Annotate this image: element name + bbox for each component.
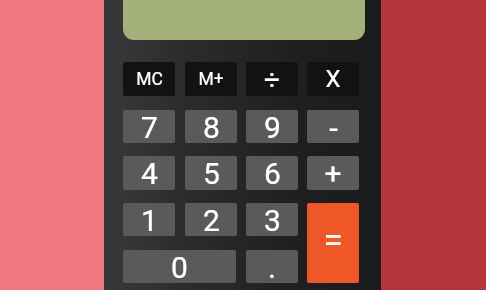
staticText: + (324, 156, 342, 190)
staticText: X (325, 65, 341, 93)
button[interactable]: Divide (246, 62, 298, 96)
button[interactable]: 1 (123, 203, 175, 236)
staticText: 9 (264, 110, 281, 143)
staticText: = (323, 220, 343, 261)
button[interactable]: Equals (307, 203, 359, 283)
button[interactable]: MC (123, 62, 175, 96)
button[interactable]: Plus (307, 156, 359, 190)
button[interactable]: 2 (185, 203, 237, 236)
button[interactable]: 7 (123, 110, 175, 143)
button[interactable]: Minus (307, 110, 359, 143)
staticText: - (329, 110, 338, 143)
button[interactable]: Multiply (307, 62, 359, 96)
staticText: M+ (198, 69, 224, 90)
staticText: 0 (171, 250, 188, 283)
staticText: 1 (141, 203, 158, 236)
button[interactable]: 0 (123, 250, 236, 283)
staticText: 2 (203, 203, 220, 236)
staticText: 5 (203, 156, 220, 190)
button[interactable]: Decimal point (246, 250, 298, 283)
staticText: 7 (141, 110, 158, 143)
staticText: 6 (264, 156, 281, 190)
button[interactable]: 4 (123, 156, 175, 190)
staticText: 8 (203, 110, 220, 143)
button[interactable]: M+ (185, 62, 237, 96)
button[interactable]: 6 (246, 156, 298, 190)
staticText: 3 (264, 203, 281, 236)
button[interactable]: 9 (246, 110, 298, 143)
staticText: MC (136, 69, 163, 90)
staticText: . (268, 250, 276, 283)
button[interactable]: 8 (185, 110, 237, 143)
button[interactable]: 3 (246, 203, 298, 236)
button[interactable]: 5 (185, 156, 237, 190)
staticText: 4 (141, 156, 158, 190)
staticText: ÷ (264, 63, 280, 96)
